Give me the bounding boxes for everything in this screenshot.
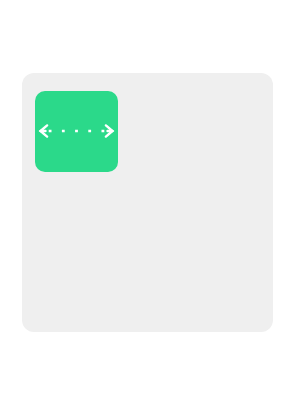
button[interactable]: Resize horizontally: [22, 73, 273, 332]
button[interactable]: Resize horizontally: [35, 91, 118, 172]
